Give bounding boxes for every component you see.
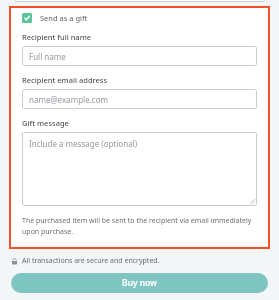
staticText: All transactions are secure and encrypte… <box>22 256 160 266</box>
staticText: Send as a gift <box>40 13 88 23</box>
staticText: Buy now <box>122 277 157 289</box>
other: Secure <box>11 258 18 265</box>
button[interactable]: Include a message (optional) <box>22 132 257 206</box>
staticText: Recipient full name <box>22 32 92 42</box>
button[interactable]: Buy now <box>11 273 268 293</box>
button[interactable]: name@example.com <box>22 89 257 109</box>
staticText: name@example.com <box>29 94 108 105</box>
button[interactable]: Send as a gift <box>22 13 88 23</box>
staticText: Full name <box>29 51 66 62</box>
staticText: Include a message (optional) <box>29 138 138 149</box>
staticText: Recipient email address <box>22 75 108 85</box>
staticText: Gift message <box>22 118 69 128</box>
button[interactable]: Full name <box>22 46 257 66</box>
staticText: The purchased item will be sent to the r… <box>22 216 257 236</box>
